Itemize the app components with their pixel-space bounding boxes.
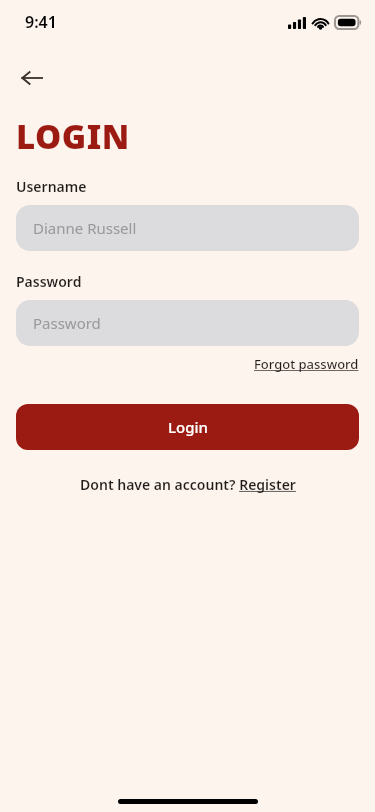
button[interactable]: Forgot password <box>254 355 359 373</box>
button[interactable]: Dianne Russell <box>16 205 359 251</box>
staticText: 9:41 <box>25 11 57 33</box>
staticText: Login <box>168 417 208 437</box>
staticText: Password <box>33 313 101 333</box>
button[interactable]: Login <box>16 404 359 450</box>
button[interactable]: Password <box>16 300 359 346</box>
staticText: Password <box>16 272 82 291</box>
staticText: Forgot password <box>254 355 359 373</box>
button[interactable]: Dont have an account? Register <box>80 475 296 494</box>
button[interactable]: Back <box>10 56 54 100</box>
staticText: Dont have an account? Register <box>80 475 296 494</box>
staticText: Dianne Russell <box>33 218 137 238</box>
staticText: LOGIN <box>16 114 130 159</box>
staticText: Username <box>16 177 87 196</box>
